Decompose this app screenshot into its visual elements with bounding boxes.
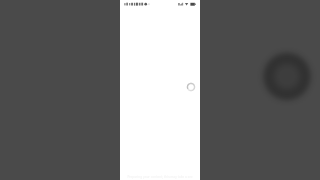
button[interactable]: Preparing your content	[120, 175, 200, 180]
button[interactable]: Loading	[186, 82, 196, 92]
button[interactable]: Status bar	[120, 0, 200, 9]
staticText: Preparing your content, this may take a …	[127, 175, 193, 179]
